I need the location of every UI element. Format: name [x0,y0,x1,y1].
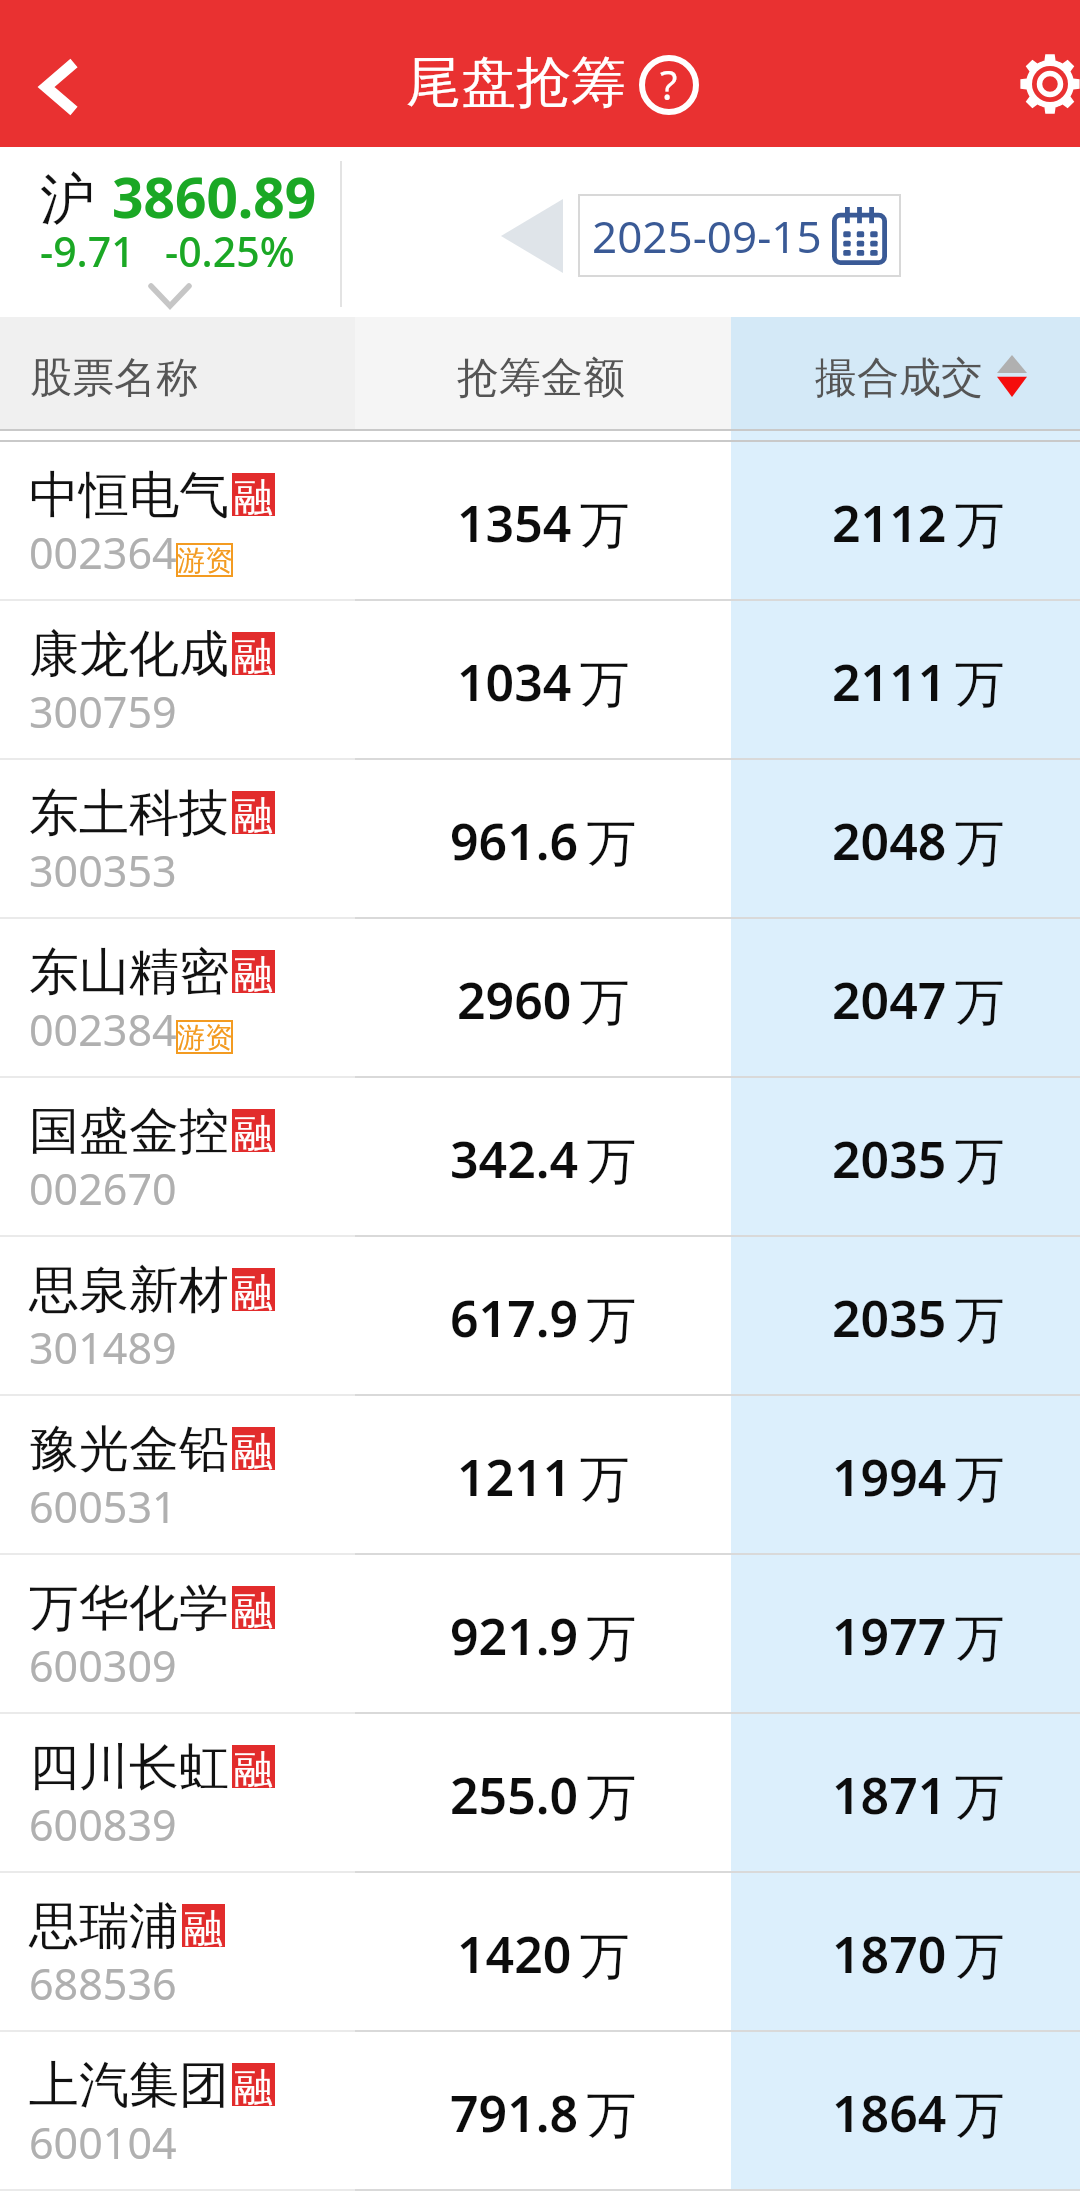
staticText: 抢筹金额 [457,352,625,405]
staticText: 2048 万 [832,807,1005,875]
button[interactable]: Help [638,54,700,116]
button[interactable]: 抢筹金额 [355,317,731,429]
staticText: ? [660,57,678,111]
staticText: 融 [234,1268,273,1311]
staticText: 万华化学 [29,1577,229,1640]
staticText: 融 [234,1109,273,1152]
staticText: 2025-09-15 [592,206,822,266]
staticText: 600309 [29,1636,177,1695]
staticText: 康龙化成 [29,623,229,686]
button[interactable]: 四川长虹 [0,1714,1080,1873]
button[interactable]: 万华化学 [0,1555,1080,1714]
staticText: 融 [234,1586,273,1629]
staticText: 2047 万 [832,966,1005,1034]
staticText: 思瑞浦 [29,1895,179,1958]
staticText: 上汽集团 [29,2054,229,2117]
staticText: 1211 万 [457,1443,630,1511]
staticText: 2112 万 [832,489,1005,557]
staticText: 002670 [29,1159,177,1218]
staticText: 游资 [177,1020,233,1054]
staticText: 尾盘抢筹 [406,48,626,117]
staticText: 2035 万 [832,1284,1005,1352]
staticText: 融 [234,2063,273,2106]
staticText: 3860.89 [112,159,317,234]
staticText: 961.6 万 [450,807,637,875]
staticText: 1994 万 [832,1443,1005,1511]
staticText: 255.0 万 [450,1761,637,1829]
staticText: 融 [234,1745,273,1788]
staticText: 豫光金铅 [29,1418,229,1481]
staticText: 2111 万 [832,648,1005,716]
staticText: 1354 万 [457,489,630,557]
staticText: 688536 [29,1954,177,2013]
staticText: 撮合成交 [815,352,983,405]
staticText: 617.9 万 [450,1284,637,1352]
staticText: 四川长虹 [29,1736,229,1799]
staticText: 1864 万 [832,2079,1005,2147]
button[interactable]: Settings [1003,36,1080,132]
staticText: 思泉新材 [29,1259,229,1322]
staticText: 300353 [29,841,177,900]
staticText: 股票名称 [30,352,198,405]
staticText: 中恒电气 [29,464,229,527]
staticText: 921.9 万 [450,1602,637,1670]
button[interactable]: 沪 [30,147,330,312]
staticText: 融 [234,1427,273,1470]
staticText: 东山精密 [29,941,229,1004]
staticText: 游资 [177,543,233,577]
staticText: 东土科技 [29,782,229,845]
button[interactable]: 国盛金控 [0,1078,1080,1237]
staticText: 300759 [29,682,177,741]
button[interactable]: 思泉新材 [0,1237,1080,1396]
button[interactable]: 豫光金铅 [0,1396,1080,1555]
button[interactable]: 股票名称 [0,317,355,429]
staticText: 1977 万 [832,1602,1005,1670]
button[interactable]: 东山精密 [0,919,1080,1078]
button[interactable]: 2025-09-15 [578,194,901,277]
staticText: 1871 万 [832,1761,1005,1829]
staticText: 600531 [29,1477,177,1536]
staticText: 600839 [29,1795,177,1854]
staticText: 1420 万 [457,1920,630,1988]
staticText: 1870 万 [832,1920,1005,1988]
staticText: 融 [184,1904,223,1947]
button[interactable]: 东土科技 [0,760,1080,919]
button[interactable]: 康龙化成 [0,601,1080,760]
button[interactable]: 上汽集团 [0,2032,1080,2191]
staticText: 国盛金控 [29,1100,229,1163]
staticText: 301489 [29,1318,177,1377]
button[interactable]: 思瑞浦 [0,1873,1080,2032]
button[interactable]: 撮合成交 [731,317,1080,429]
staticText: 002384 [29,1000,177,1059]
staticText: 1034 万 [457,648,630,716]
staticText: 002364 [29,523,177,582]
staticText: 600104 [29,2113,177,2172]
staticText: 791.8 万 [450,2079,637,2147]
staticText: 342.4 万 [450,1125,637,1193]
staticText: -0.25% [165,223,295,279]
button[interactable]: 中恒电气 [0,442,1080,601]
staticText: 沪 [40,165,95,234]
button[interactable]: Back [0,25,114,125]
staticText: 2035 万 [832,1125,1005,1193]
staticText: 融 [234,950,273,993]
staticText: 2960 万 [457,966,630,1034]
staticText: 融 [234,473,273,516]
staticText: -9.71 [40,223,135,279]
staticText: 融 [234,632,273,675]
staticText: 融 [234,791,273,834]
